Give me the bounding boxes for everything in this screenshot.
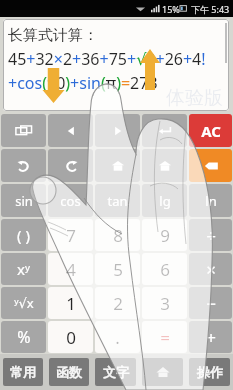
button[interactable]: ln <box>189 184 232 217</box>
button[interactable]: = <box>142 321 187 353</box>
button[interactable]: cos <box>48 184 93 217</box>
button[interactable]: Home <box>142 358 183 386</box>
button[interactable]: Paste <box>142 149 187 182</box>
staticText: ÷ <box>206 224 216 247</box>
button[interactable]: 7 <box>48 219 93 251</box>
staticText: 文字 <box>103 364 129 380</box>
button[interactable]: − <box>189 287 232 319</box>
staticText: 9 <box>160 224 170 247</box>
staticText: % <box>17 326 31 348</box>
button[interactable]: 9 <box>142 219 187 251</box>
button[interactable]: 函数 <box>49 358 89 386</box>
button[interactable]: % <box>1 321 46 353</box>
staticText: lg <box>159 192 171 210</box>
staticText: 常用 <box>10 364 36 380</box>
button[interactable]: 3 <box>142 287 187 319</box>
staticText: 2 <box>113 292 123 315</box>
staticText: 函数 <box>56 364 82 380</box>
button[interactable]: . <box>95 321 140 353</box>
staticText: = <box>160 326 170 349</box>
button[interactable]: Copy <box>1 114 46 147</box>
staticText: ʸ√x <box>14 294 34 312</box>
staticText: 15% <box>162 3 180 15</box>
button[interactable]: sin <box>1 184 46 217</box>
button[interactable]: 2 <box>95 287 140 319</box>
staticText: 6 <box>160 258 170 281</box>
button[interactable]: 1 <box>48 287 93 319</box>
staticText: ( ) <box>17 225 30 245</box>
button[interactable]: Enter <box>142 114 187 147</box>
staticText: tan <box>107 192 128 210</box>
staticText: sin <box>15 192 33 210</box>
button[interactable]: Copy text <box>95 149 140 182</box>
button[interactable]: 操作 <box>189 358 230 386</box>
button[interactable]: × <box>189 253 232 285</box>
button[interactable]: Left <box>48 114 93 147</box>
button[interactable]: ÷ <box>189 219 232 251</box>
button[interactable]: Redo <box>48 149 93 182</box>
staticText: 0 <box>66 326 76 349</box>
button[interactable]: 8 <box>95 219 140 251</box>
staticText: ln <box>205 192 217 210</box>
button[interactable]: 4 <box>48 253 93 285</box>
staticText: 4 <box>66 258 76 281</box>
button[interactable]: Right <box>95 114 140 147</box>
staticText: cos <box>60 192 81 210</box>
staticText: xʸ <box>17 259 30 279</box>
button[interactable]: Backspace <box>189 149 232 182</box>
button[interactable]: AC <box>189 114 232 147</box>
button[interactable]: xʸ <box>1 253 46 285</box>
button[interactable]: Undo <box>1 149 46 182</box>
staticText: − <box>206 292 216 315</box>
staticText: +cos(90)+sin(π)=273 <box>8 72 158 94</box>
staticText: AC <box>201 121 221 141</box>
staticText: 3 <box>160 292 170 315</box>
button[interactable]: ʸ√x <box>1 287 46 319</box>
button[interactable]: ( ) <box>1 219 46 251</box>
button[interactable]: 0 <box>48 321 93 353</box>
staticText: . <box>115 326 120 349</box>
button[interactable]: 常用 <box>3 358 43 386</box>
button[interactable]: + <box>189 321 232 353</box>
staticText: 操作 <box>197 364 223 380</box>
staticText: 1 <box>66 292 76 315</box>
button[interactable]: 6 <box>142 253 187 285</box>
button[interactable]: lg <box>142 184 187 217</box>
staticText: 长算式计算： <box>8 26 98 45</box>
staticText: 45+32×2+36+75+√9+26+4! <box>8 48 206 70</box>
button[interactable]: tan <box>95 184 140 217</box>
staticText: 7 <box>66 224 76 247</box>
staticText: 体验版 <box>166 86 223 110</box>
button[interactable]: 5 <box>95 253 140 285</box>
button[interactable]: 文字 <box>95 358 136 386</box>
staticText: 8 <box>113 224 123 247</box>
staticText: 下午 5:43 <box>191 3 230 15</box>
staticText: + <box>206 326 216 349</box>
staticText: × <box>206 258 216 281</box>
staticText: 5 <box>113 258 123 281</box>
